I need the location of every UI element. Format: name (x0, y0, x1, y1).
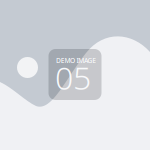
staticText: 05 (55, 56, 91, 98)
staticText: DEMO IMAGE (56, 56, 96, 65)
